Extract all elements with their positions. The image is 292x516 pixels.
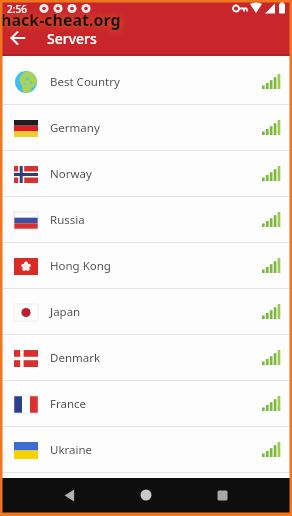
button[interactable]: Denmark bbox=[0, 335, 292, 380]
staticText: hack-cheat.org bbox=[1, 9, 121, 31]
button[interactable]: Ukraine bbox=[0, 427, 292, 472]
button[interactable]: Hong Kong bbox=[0, 243, 292, 288]
button[interactable]: Japan bbox=[0, 289, 292, 334]
button[interactable]: Germany bbox=[0, 105, 292, 150]
staticText: Russia bbox=[50, 212, 85, 228]
staticText: Denmark bbox=[50, 350, 101, 366]
staticText: 2:56 bbox=[7, 2, 27, 16]
staticText: Norway bbox=[50, 166, 92, 182]
button[interactable] bbox=[108, 478, 184, 512]
button[interactable]: France bbox=[0, 381, 292, 426]
staticText: Hong Kong bbox=[50, 258, 111, 274]
button[interactable]: Russia bbox=[0, 197, 292, 242]
staticText: Ukraine bbox=[50, 442, 93, 458]
staticText: Best Country bbox=[50, 74, 120, 90]
staticText: Germany bbox=[50, 120, 100, 136]
staticText: France bbox=[50, 396, 87, 412]
button[interactable]: Best Country bbox=[0, 59, 292, 104]
button[interactable] bbox=[0, 20, 36, 56]
staticText: Japan bbox=[50, 304, 81, 320]
button[interactable] bbox=[32, 478, 108, 512]
button[interactable]: Norway bbox=[0, 151, 292, 196]
staticText: Servers bbox=[47, 29, 97, 48]
button[interactable] bbox=[184, 478, 260, 512]
